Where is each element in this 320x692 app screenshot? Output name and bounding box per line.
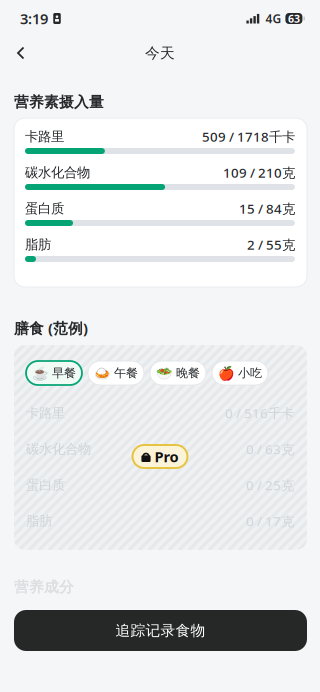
staticText: 蛋白质 xyxy=(25,200,64,217)
staticText: 0 / 63克 xyxy=(246,440,294,458)
staticText: 63 xyxy=(288,11,300,26)
button[interactable]: 🍛 xyxy=(88,361,144,385)
staticText: ☕ xyxy=(32,365,49,381)
staticText: 0 / 516千卡 xyxy=(225,404,294,422)
staticText: 早餐 xyxy=(52,366,76,380)
staticText: 脂肪 xyxy=(25,236,51,253)
button[interactable]: ☕ xyxy=(26,361,82,385)
staticText: 碳水化合物 xyxy=(26,441,91,457)
staticText: 追踪记录食物 xyxy=(115,621,205,639)
staticText: 2 / 55克 xyxy=(247,236,295,253)
staticText: 膳食 (范例) xyxy=(14,318,88,338)
staticText: Pro xyxy=(155,447,179,466)
button[interactable]: 返回 xyxy=(0,37,42,69)
staticText: 营养成分 xyxy=(14,578,74,596)
staticText: 0 / 25克 xyxy=(246,476,294,494)
staticText: 15 / 84克 xyxy=(239,200,295,217)
staticText: 卡路里 xyxy=(26,405,65,421)
staticText: 3:19 xyxy=(20,9,48,28)
staticText: 🍎 xyxy=(218,365,235,381)
button[interactable]: 🥗 xyxy=(150,361,206,385)
staticText: 营养素摄入量 xyxy=(14,93,104,111)
staticText: 0 / 17克 xyxy=(246,512,294,530)
staticText: 今天 xyxy=(145,44,175,62)
staticText: 晚餐 xyxy=(176,366,200,380)
staticText: 午餐 xyxy=(114,366,138,380)
staticText: 卡路里 xyxy=(25,128,64,145)
button[interactable]: 追踪记录食物 xyxy=(14,610,307,651)
staticText: 109 / 210克 xyxy=(223,164,295,181)
staticText: 4G xyxy=(265,10,281,26)
staticText: 碳水化合物 xyxy=(25,164,90,181)
staticText: 🥗 xyxy=(156,365,173,381)
staticText: 蛋白质 xyxy=(26,477,65,493)
staticText: 🍛 xyxy=(94,365,111,381)
staticText: 509 / 1718千卡 xyxy=(202,128,295,145)
staticText: 脂肪 xyxy=(26,513,52,529)
staticText: 小吃 xyxy=(238,366,262,380)
button[interactable]: 🍎 xyxy=(212,361,268,385)
button[interactable]: Pro xyxy=(132,445,187,468)
